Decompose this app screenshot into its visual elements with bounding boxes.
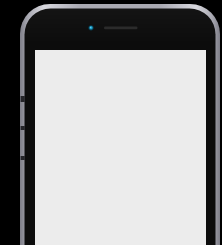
button[interactable]: Phone device mockup, top portion <box>0 0 222 245</box>
